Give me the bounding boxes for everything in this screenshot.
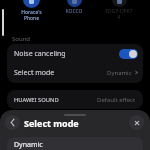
staticText: Default effect bbox=[97, 96, 136, 104]
button[interactable]: Noise canceling bbox=[7, 44, 143, 63]
staticText: Horace's Phone bbox=[21, 9, 42, 22]
button[interactable]: Back bbox=[5, 115, 20, 130]
staticText: Noise canceling bbox=[14, 49, 66, 59]
button[interactable]: HUAWEI SOUND bbox=[7, 90, 143, 109]
staticText: EDGY-DPK7 4 bbox=[105, 8, 133, 21]
staticText: Dynamic bbox=[14, 140, 43, 150]
button[interactable]: EDGY-DPK7 4 bbox=[102, 0, 136, 21]
button[interactable]: KOCCO bbox=[57, 0, 91, 15]
staticText: Sound bbox=[12, 35, 31, 43]
staticText: Select mode bbox=[24, 117, 79, 129]
staticText: HUAWEI SOUND bbox=[14, 96, 59, 104]
button[interactable]: Horace's Phone bbox=[14, 0, 48, 22]
button[interactable]: Noise canceling toggle bbox=[119, 49, 138, 59]
staticText: Select mode bbox=[14, 68, 55, 78]
button[interactable]: Close bbox=[129, 115, 144, 130]
staticText: Dynamic bbox=[107, 69, 132, 77]
button[interactable]: Dynamic bbox=[7, 137, 143, 150]
staticText: KOCCO bbox=[65, 8, 83, 15]
button[interactable]: Select mode bbox=[7, 63, 143, 82]
